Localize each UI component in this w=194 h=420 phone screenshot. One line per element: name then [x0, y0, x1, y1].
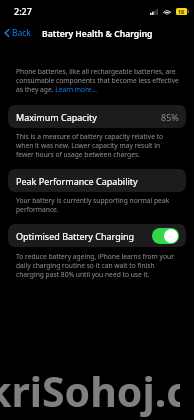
button[interactable]: Optimised Battery Charging [8, 224, 186, 247]
staticText: Peak Performance Capability [16, 175, 138, 187]
staticText: 18 [178, 8, 185, 15]
staticText: Maximum Capacity [16, 111, 97, 123]
staticText: To reduce battery ageing, iPhone learns … [16, 252, 178, 279]
staticText: Back [12, 27, 31, 39]
staticText: 2:27 [14, 5, 32, 17]
staticText: Battery Health & Charging [42, 28, 153, 40]
staticText: Your battery is currently supporting nor… [16, 196, 178, 214]
staticText: This is a measure of battery capacity re… [16, 132, 178, 159]
button[interactable]: Back [0, 25, 37, 41]
staticText: Phone batteries, like all rechargeable b… [16, 67, 179, 94]
staticText: Optimised Battery Charging [16, 230, 135, 242]
staticText: 85% [161, 111, 179, 123]
staticText: kriSohoj.com [0, 363, 180, 419]
button[interactable]: Peak Performance Capability [8, 169, 186, 192]
button[interactable]: Optimised Battery Charging toggle [152, 228, 179, 244]
button[interactable]: Maximum Capacity [8, 105, 186, 128]
